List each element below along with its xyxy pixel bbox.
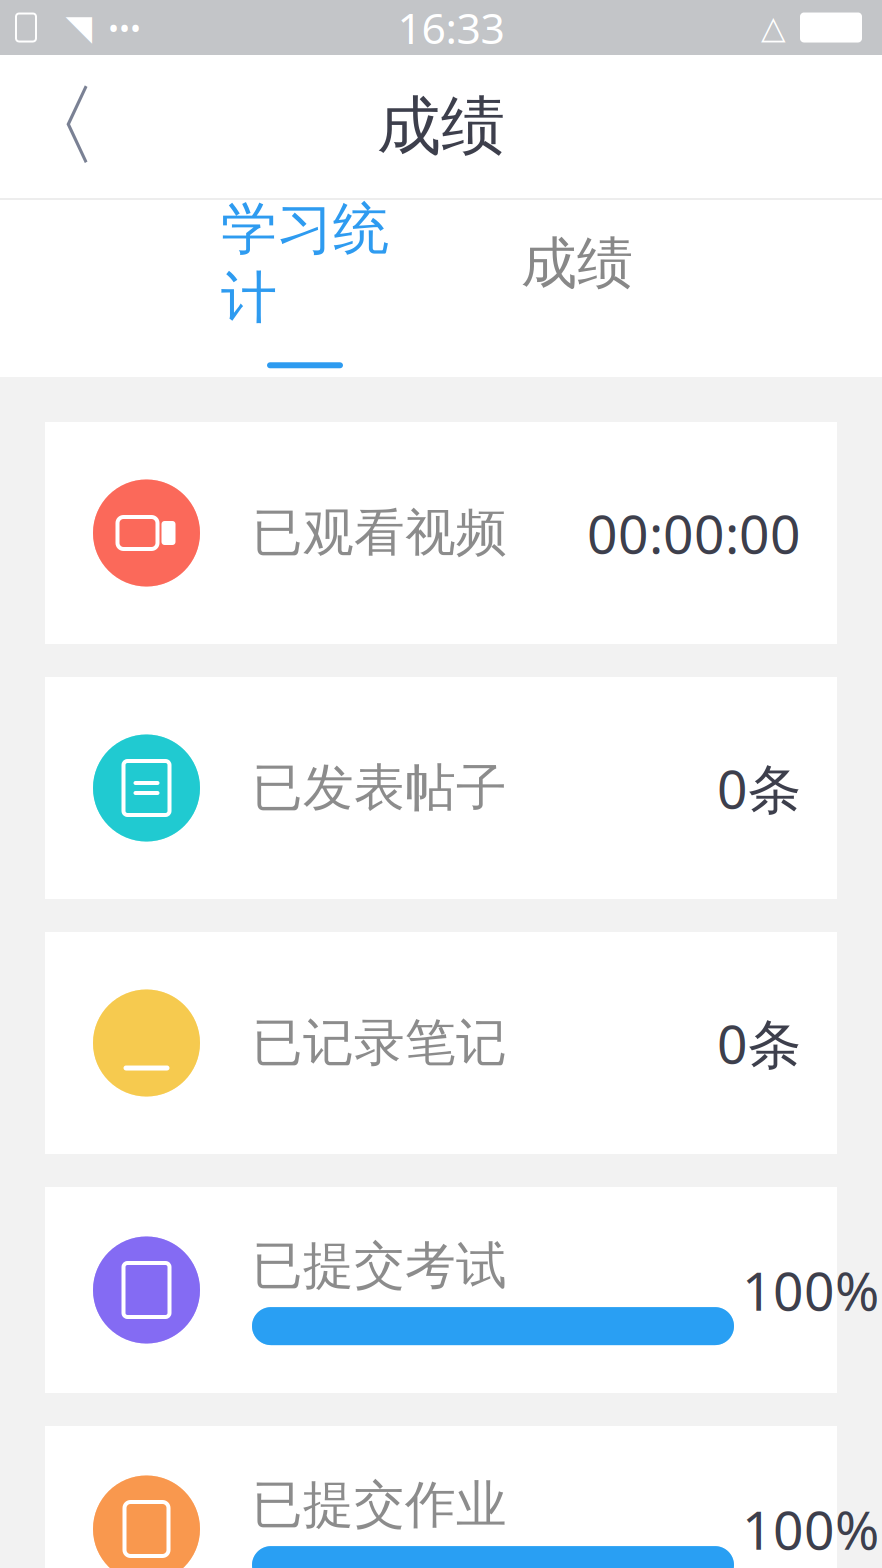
staticText: 已记录笔记 bbox=[252, 1012, 507, 1074]
staticText: 已提交考试 bbox=[252, 1235, 507, 1297]
button[interactable]: 已提交作业 bbox=[45, 1426, 837, 1568]
button[interactable]: 已记录笔记 bbox=[45, 932, 837, 1154]
staticText: 00:00:00 bbox=[587, 498, 801, 568]
staticText: 100% bbox=[742, 1494, 879, 1564]
staticText: 已观看视频 bbox=[252, 502, 507, 564]
staticText: 已发表帖子 bbox=[252, 757, 507, 819]
staticText: ◥ bbox=[65, 8, 92, 47]
button[interactable]: 学习统计 bbox=[200, 195, 410, 368]
staticText: 16:33 bbox=[397, 0, 504, 56]
staticText: 学习统计 bbox=[221, 195, 389, 332]
staticText: 0条 bbox=[717, 1008, 801, 1078]
staticText: 已提交作业 bbox=[252, 1474, 507, 1536]
staticText: △ bbox=[761, 9, 786, 46]
staticText: 0条 bbox=[717, 753, 801, 823]
button[interactable]: 返回 bbox=[0, 71, 110, 181]
staticText: 〈 bbox=[11, 72, 99, 181]
staticText: 成绩 bbox=[521, 229, 633, 298]
button[interactable]: 已发表帖子 bbox=[45, 677, 837, 899]
staticText: 100% bbox=[742, 1255, 879, 1325]
staticText: 成绩 bbox=[377, 87, 505, 166]
button[interactable]: 成绩 bbox=[472, 229, 682, 334]
button[interactable]: 已提交考试 bbox=[45, 1187, 837, 1393]
staticText: ••• bbox=[108, 8, 141, 47]
button[interactable]: 已观看视频 bbox=[45, 422, 837, 644]
